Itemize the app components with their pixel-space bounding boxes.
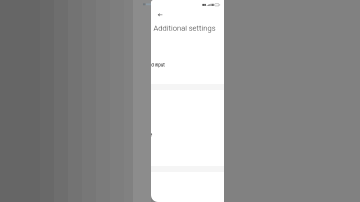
staticText: Date and time [60, 41, 172, 63]
staticText: Privacy [59, 154, 117, 176]
staticText: System settings [60, 32, 159, 48]
staticText: Privacy p [59, 38, 131, 59]
button[interactable]: One-handed mode [151, 128, 224, 141]
staticText: Accessibility [60, 98, 159, 120]
staticText: Screen Recorder [60, 150, 192, 171]
staticText: Safety an [59, 25, 135, 46]
staticText: Additional settings [60, 11, 308, 46]
staticText: Game Turbo [60, 181, 158, 202]
staticText: Languages and input [60, 54, 227, 76]
staticText: Google [59, 116, 115, 137]
staticText: screen lo [59, 12, 131, 33]
staticText: Digital W [59, 82, 129, 103]
staticText: Location [59, 167, 128, 189]
staticText: Apps [59, 51, 100, 72]
staticText: Region [60, 67, 115, 89]
staticText: Battery [59, 64, 117, 85]
button[interactable]: Languages and input [151, 58, 224, 71]
staticText: Special features [60, 170, 159, 187]
staticText: Clear speaker [60, 137, 170, 158]
staticText: Xiaomi A [59, 103, 130, 124]
staticText: Accessibility [60, 88, 136, 105]
staticText: Feedback [59, 180, 137, 202]
staticText: One-handed mode [60, 124, 207, 145]
staticText: Gesture shortcuts [60, 111, 203, 133]
staticText: controls [59, 88, 123, 109]
button[interactable]: Back [154, 9, 166, 20]
staticText: Addition [59, 129, 125, 150]
